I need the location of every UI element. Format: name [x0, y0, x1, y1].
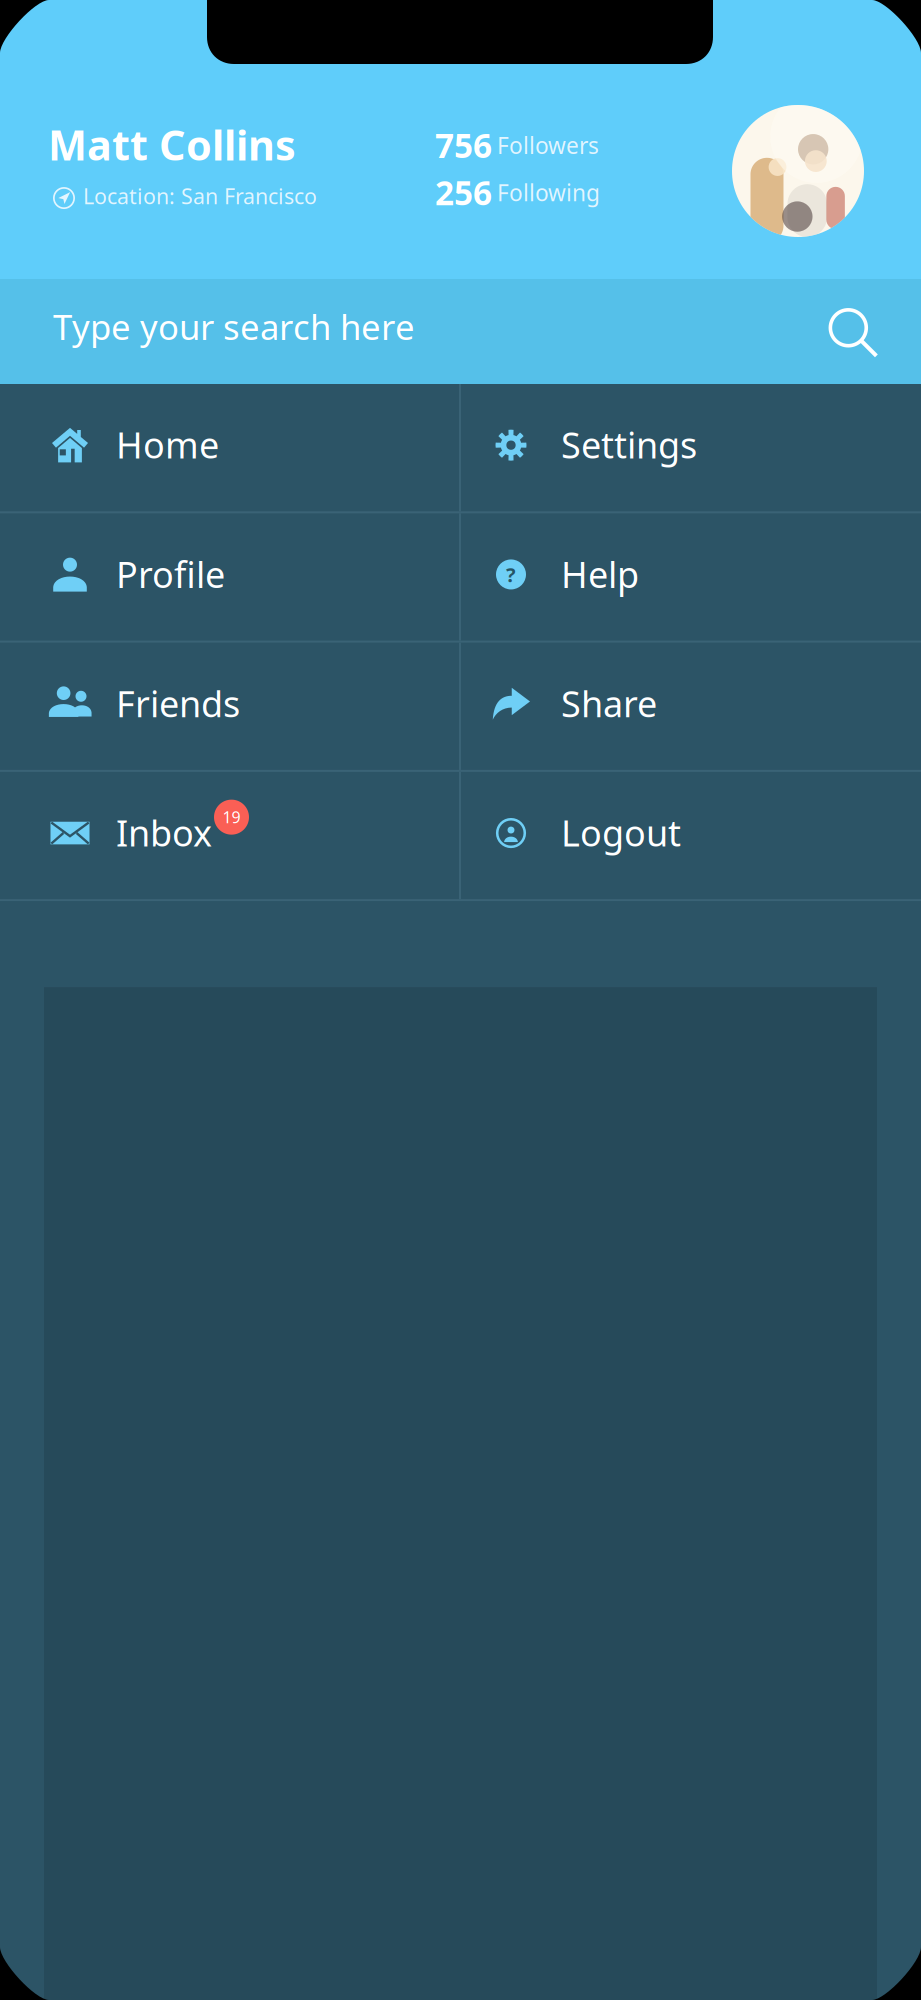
button[interactable]: Inbox [0, 772, 459, 899]
staticText: Type your search here [53, 303, 415, 349]
staticText: Help [561, 550, 639, 598]
staticText: Location: San Francisco [83, 182, 317, 210]
button[interactable]: Share [461, 643, 921, 770]
staticText: ? [506, 561, 516, 588]
staticText: Profile [116, 550, 225, 598]
staticText: Following [497, 177, 600, 207]
staticText: Inbox [116, 809, 212, 856]
staticText: Logout [561, 809, 681, 856]
button[interactable]: Settings [461, 384, 921, 511]
button[interactable]: Profile [0, 513, 459, 641]
button[interactable]: Logout [461, 772, 921, 899]
staticText: Settings [561, 421, 697, 468]
staticText: 256 [435, 170, 492, 215]
staticText: 19 [222, 806, 240, 828]
staticText: Friends [116, 679, 240, 727]
staticText: Home [116, 421, 219, 468]
button[interactable]: Home [0, 384, 459, 511]
staticText: Followers [497, 130, 599, 160]
button[interactable]: Type your search here [0, 279, 921, 384]
staticText: 756 [435, 123, 492, 167]
button[interactable]: Friends [0, 643, 459, 770]
button[interactable]: ? [461, 513, 921, 641]
staticText: Matt Collins [48, 117, 296, 172]
staticText: Share [561, 679, 657, 727]
